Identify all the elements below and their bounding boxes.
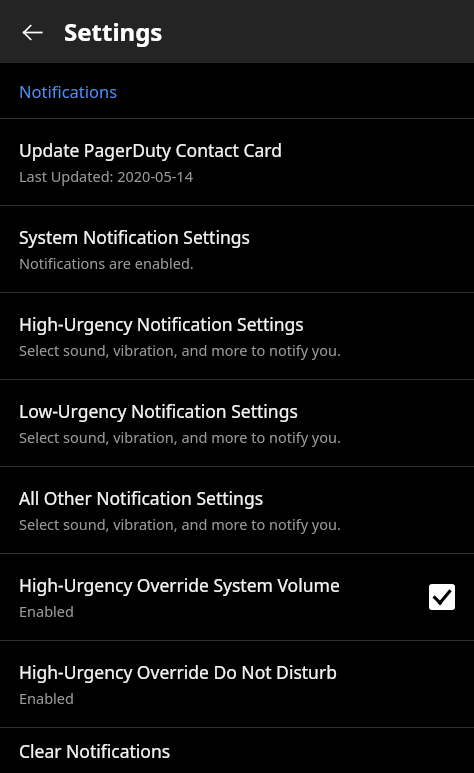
staticText: Update PagerDuty Contact Card (19, 138, 282, 162)
staticText: Notifications (19, 80, 118, 102)
staticText: Enabled (19, 601, 74, 621)
staticText: Select sound, vibration, and more to not… (19, 514, 341, 534)
button[interactable]: High-Urgency Override System Volume (0, 554, 474, 640)
staticText: System Notification Settings (19, 225, 250, 249)
staticText: High-Urgency Override System Volume (19, 573, 340, 597)
button[interactable]: Back (12, 12, 52, 52)
staticText: High-Urgency Notification Settings (19, 312, 304, 336)
staticText: Low-Urgency Notification Settings (19, 399, 298, 423)
staticText: Select sound, vibration, and more to not… (19, 340, 341, 360)
staticText: High-Urgency Override Do Not Disturb (19, 660, 337, 684)
button[interactable]: System Notification Settings (0, 206, 474, 292)
button[interactable]: High-Urgency Override Do Not Disturb (0, 641, 474, 727)
staticText: Last Updated: 2020-05-14 (19, 166, 193, 186)
staticText: Select sound, vibration, and more to not… (19, 427, 341, 447)
staticText: Clear Notifications (19, 739, 171, 763)
button[interactable]: All Other Notification Settings (0, 467, 474, 553)
staticText: Notifications are enabled. (19, 253, 194, 273)
staticText: Enabled (19, 688, 74, 708)
button[interactable]: Update PagerDuty Contact Card (0, 119, 474, 205)
button[interactable]: Clear Notifications (0, 728, 474, 773)
button[interactable]: High-Urgency Notification Settings (0, 293, 474, 379)
staticText: All Other Notification Settings (19, 486, 264, 510)
button[interactable]: Low-Urgency Notification Settings (0, 380, 474, 466)
staticText: Settings (64, 15, 163, 48)
